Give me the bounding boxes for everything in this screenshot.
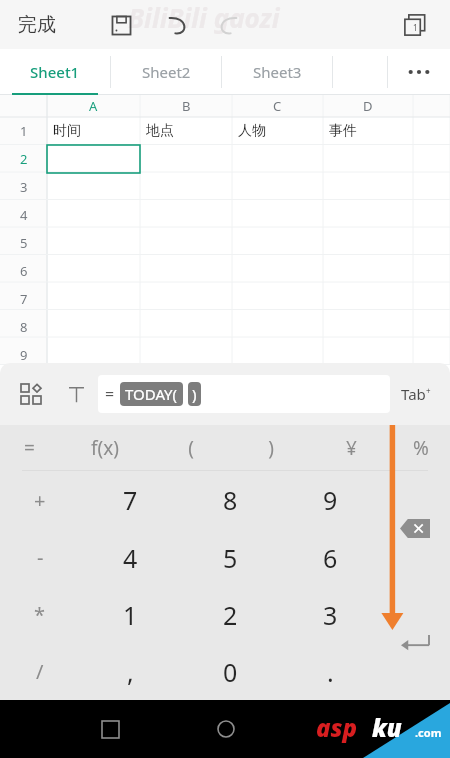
staticText: BiliBili gaozi [128, 0, 280, 35]
button[interactable]: Redo [207, 4, 249, 46]
button[interactable]: Functions [8, 371, 54, 417]
button[interactable]: f(x) [59, 425, 151, 470]
staticText: 7 [123, 483, 138, 517]
staticText: 8 [20, 318, 28, 336]
button[interactable]: - [0, 529, 80, 586]
staticText: 时间 [53, 122, 81, 140]
staticText: 完成 [18, 13, 56, 37]
staticText: 4 [123, 541, 138, 575]
staticText: 1 [20, 122, 28, 140]
staticText: - [37, 544, 44, 571]
staticText: 事件 [329, 122, 357, 140]
button[interactable]: Backspace [380, 471, 450, 585]
staticText: ) [268, 435, 274, 461]
staticText: 4 [20, 206, 28, 224]
button[interactable]: Sheet1 [0, 49, 110, 95]
staticText: Tab [401, 384, 426, 404]
button[interactable]: = [98, 375, 390, 413]
button[interactable]: / [0, 643, 80, 700]
staticText: . [327, 655, 334, 689]
button[interactable]: 9 [280, 471, 380, 529]
button[interactable]: Sheets [394, 4, 436, 46]
button[interactable]: 0 [180, 643, 280, 700]
button[interactable]: , [80, 643, 180, 700]
staticText: .com [415, 725, 442, 740]
button[interactable]: 4 [80, 529, 180, 586]
staticText: / [36, 658, 44, 685]
button[interactable]: * [0, 586, 80, 643]
staticText: D [363, 97, 373, 115]
staticText: 9 [323, 483, 338, 517]
button[interactable]: Undo [157, 4, 199, 46]
staticText: f(x) [91, 435, 119, 461]
staticText: 地点 [146, 122, 174, 140]
button[interactable]: 5 [180, 529, 280, 586]
staticText: Sheet2 [142, 62, 191, 82]
button[interactable]: More [388, 49, 450, 95]
button[interactable]: Home [202, 705, 250, 753]
button[interactable]: Recents [86, 705, 134, 753]
button[interactable]: Enter [380, 585, 450, 700]
staticText: TODAY( [125, 384, 178, 404]
staticText: 1 [123, 598, 138, 632]
staticText: Sheet1 [30, 62, 80, 82]
button[interactable]: 6 [280, 529, 380, 586]
staticText: = [105, 383, 115, 405]
button[interactable]: 2 [180, 586, 280, 643]
staticText: 人物 [238, 122, 266, 140]
button[interactable]: ) [231, 425, 311, 470]
button[interactable]: . [280, 643, 380, 700]
button[interactable]: Sheet2 [111, 49, 221, 95]
staticText: * [34, 601, 46, 628]
staticText: 5 [223, 541, 238, 575]
staticText: 9 [20, 346, 28, 364]
staticText: ( [188, 435, 194, 461]
staticText: % [413, 435, 429, 461]
staticText: 6 [323, 541, 338, 575]
staticText: 1 [413, 22, 418, 33]
staticText: 8 [223, 483, 238, 517]
staticText: ) [192, 384, 197, 404]
staticText: 3 [323, 598, 338, 632]
button[interactable]: = [0, 425, 59, 470]
button[interactable]: Tab [390, 363, 442, 425]
staticText: + [426, 385, 431, 396]
staticText: 2 [20, 150, 28, 168]
button[interactable]: % [391, 425, 450, 470]
staticText: 3 [20, 178, 28, 196]
staticText: C [273, 97, 282, 115]
staticText: ku [372, 711, 402, 744]
staticText: 5 [20, 234, 28, 252]
button[interactable]: Text format [54, 372, 98, 416]
button[interactable]: Save [100, 4, 142, 46]
button[interactable]: ( [151, 425, 231, 470]
staticText: , [127, 655, 134, 689]
button[interactable]: 8 [180, 471, 280, 529]
button[interactable]: 完成 [14, 9, 60, 41]
button[interactable]: ¥ [311, 425, 391, 470]
button[interactable]: 1 [80, 586, 180, 643]
staticText: ¥ [346, 435, 357, 461]
staticText: 6 [20, 262, 28, 280]
staticText: A [89, 97, 98, 115]
staticText: = [24, 435, 35, 461]
button[interactable]: 3 [280, 586, 380, 643]
staticText: 0 [223, 655, 238, 689]
staticText: 2 [223, 598, 238, 632]
staticText: B [182, 97, 191, 115]
staticText: asp [316, 711, 358, 744]
button[interactable]: + [0, 471, 80, 529]
staticText: 7 [20, 290, 28, 308]
staticText: Sheet3 [253, 62, 302, 82]
staticText: + [34, 487, 46, 514]
button[interactable]: Sheet3 [222, 49, 332, 95]
button[interactable]: 7 [80, 471, 180, 529]
